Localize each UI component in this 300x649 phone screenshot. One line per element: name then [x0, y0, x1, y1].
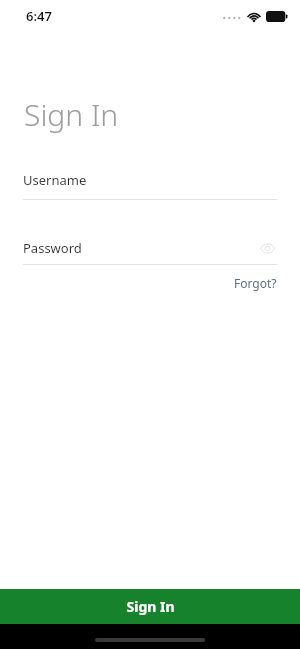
- button[interactable]: Show password: [257, 238, 277, 258]
- button[interactable]: Sign In: [0, 589, 300, 624]
- staticText: 6:47: [26, 7, 52, 25]
- button[interactable]: Password: [0, 238, 300, 265]
- staticText: Forgot?: [234, 275, 277, 291]
- button[interactable]: Forgot?: [234, 273, 300, 293]
- staticText: Sign In: [126, 597, 175, 616]
- staticText: Sign In: [24, 94, 119, 135]
- staticText: Username: [23, 171, 87, 189]
- staticText: Password: [23, 239, 82, 257]
- button[interactable]: Username: [0, 171, 300, 200]
